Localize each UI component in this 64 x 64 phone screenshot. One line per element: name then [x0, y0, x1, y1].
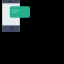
button[interactable]: Message bubble — [10, 6, 30, 18]
button[interactable]: Conversation title bar — [2, 0, 20, 3]
button[interactable]: Message input bar — [2, 26, 20, 32]
